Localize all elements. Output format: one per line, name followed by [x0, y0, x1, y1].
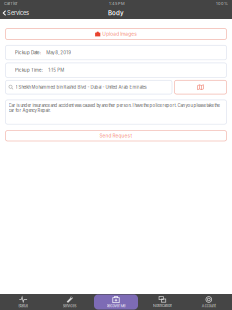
- button[interactable]: Upload Images: [5, 28, 226, 39]
- staticText: Notification: [153, 303, 172, 308]
- button[interactable]: Services: [0, 7, 32, 19]
- staticText: 1:15 PM: [48, 67, 64, 73]
- staticText: Status: [18, 304, 28, 308]
- staticText: Pickup Date:: [15, 50, 41, 55]
- button[interactable]: Notification: [139, 294, 186, 309]
- button[interactable]: Account: [186, 294, 232, 309]
- button[interactable]: Send Request: [5, 131, 226, 141]
- staticText: Pickup Time:: [15, 67, 43, 73]
- staticText: 1 Sheikh Mohammed bin Rashid Blvd - Duba…: [15, 85, 146, 90]
- staticText: 100%: [216, 1, 228, 6]
- staticText: Recover Me: [106, 304, 125, 308]
- staticText: Services: [7, 9, 29, 16]
- staticText: Carrier: [4, 1, 18, 6]
- staticText: Account: [202, 304, 216, 308]
- staticText: Body: [108, 9, 124, 17]
- staticText: Send Request: [99, 133, 132, 139]
- button[interactable]: Open map: [174, 80, 226, 94]
- staticText: Car is under insurance and accident was …: [8, 103, 219, 113]
- button[interactable]: Services: [46, 294, 93, 309]
- button[interactable]: Status: [0, 294, 46, 309]
- button[interactable]: Recover Me: [93, 294, 139, 309]
- staticText: 1:45 PM: [109, 1, 125, 6]
- staticText: May 8, 2019: [46, 50, 71, 55]
- staticText: Upload Images: [102, 31, 137, 37]
- staticText: Services: [63, 304, 77, 308]
